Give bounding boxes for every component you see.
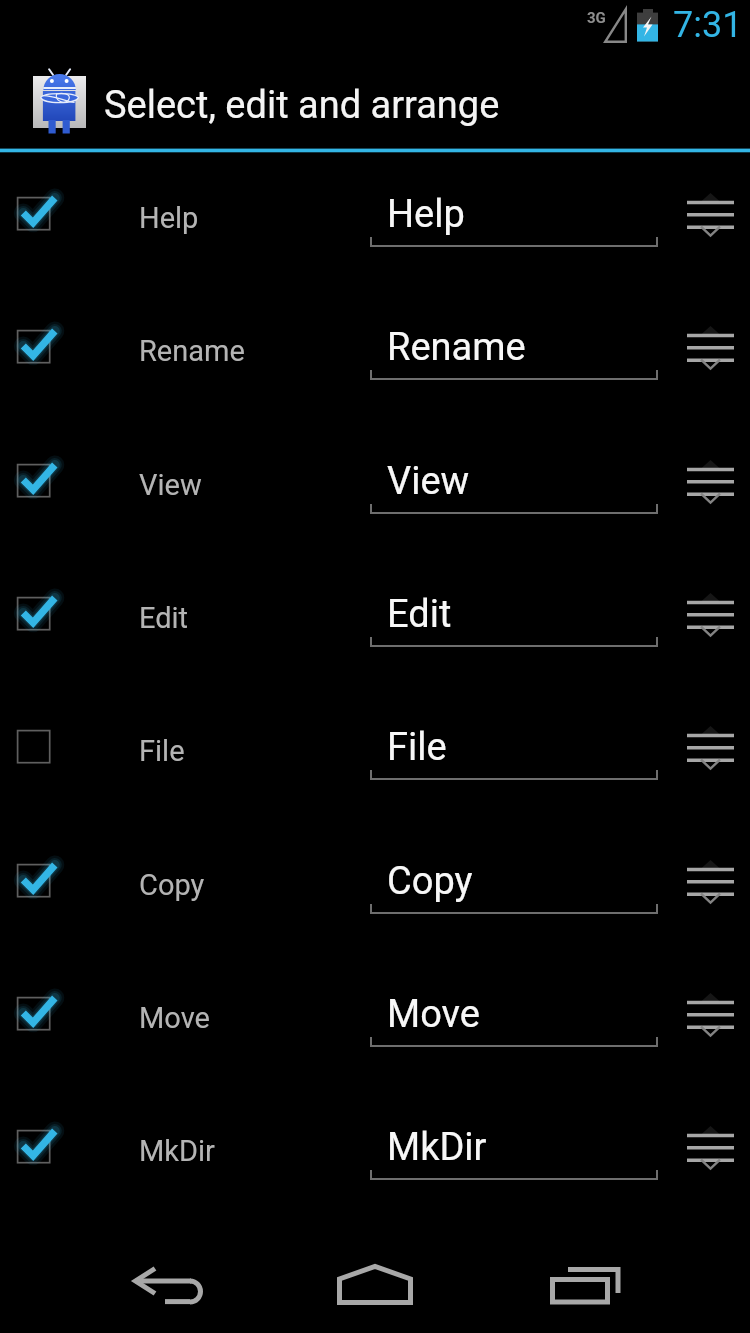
button[interactable]: Recent apps xyxy=(480,1240,690,1333)
staticText: 3G xyxy=(587,9,606,27)
button[interactable]: Edit checked xyxy=(0,586,68,642)
button[interactable]: Help xyxy=(370,178,658,250)
button[interactable]: Edit checked xyxy=(0,572,750,656)
button[interactable]: MkDir checked xyxy=(0,1105,750,1189)
staticText: Edit xyxy=(139,601,189,635)
button[interactable]: Reorder MkDir xyxy=(682,1111,744,1177)
button[interactable]: Rename xyxy=(370,311,658,383)
button[interactable]: Home xyxy=(270,1240,480,1333)
button[interactable]: View checked xyxy=(0,453,68,509)
button[interactable]: Move checked xyxy=(0,986,68,1042)
button[interactable]: MkDir xyxy=(370,1111,658,1183)
button[interactable]: Select, edit and arrange xyxy=(0,52,540,148)
button[interactable]: Reorder Copy xyxy=(682,845,744,911)
button[interactable]: Reorder Edit xyxy=(682,578,744,644)
staticText: Help xyxy=(139,201,199,235)
button[interactable]: Edit xyxy=(370,578,658,650)
staticText: View xyxy=(387,459,470,504)
staticText: Select, edit and arrange xyxy=(104,83,500,128)
button[interactable]: Copy checked xyxy=(0,839,750,923)
staticText: Copy xyxy=(139,868,205,902)
staticText: File xyxy=(387,725,447,770)
button[interactable]: Help checked xyxy=(0,186,68,242)
button[interactable]: View checked xyxy=(0,439,750,523)
button[interactable]: Reorder Move xyxy=(682,978,744,1044)
button[interactable]: Reorder View xyxy=(682,445,744,511)
staticText: File xyxy=(139,734,185,768)
staticText: Edit xyxy=(387,592,452,637)
button[interactable]: File unchecked xyxy=(0,705,750,789)
staticText: MkDir xyxy=(139,1134,215,1168)
button[interactable]: Move xyxy=(370,978,658,1050)
button[interactable]: Reorder Help xyxy=(682,178,744,244)
button[interactable]: MkDir checked xyxy=(0,1119,68,1175)
staticText: Move xyxy=(139,1001,210,1035)
button[interactable]: Copy checked xyxy=(0,853,68,909)
staticText: Rename xyxy=(139,334,245,368)
button[interactable]: Reorder Rename xyxy=(682,311,744,377)
button[interactable]: File unchecked xyxy=(0,719,68,775)
button[interactable]: Help checked xyxy=(0,172,750,256)
button[interactable]: Reorder File xyxy=(682,711,744,777)
staticText: Rename xyxy=(387,325,526,370)
button[interactable]: Copy xyxy=(370,845,658,917)
staticText: Move xyxy=(387,992,480,1037)
button[interactable]: Rename checked xyxy=(0,305,750,389)
button[interactable]: View xyxy=(370,445,658,517)
button[interactable]: Rename checked xyxy=(0,319,68,375)
staticText: View xyxy=(139,468,202,502)
staticText: MkDir xyxy=(387,1125,487,1170)
staticText: Copy xyxy=(387,859,473,904)
button[interactable]: Move checked xyxy=(0,972,750,1056)
staticText: 7:31 xyxy=(673,4,743,46)
button[interactable]: Back xyxy=(61,1240,271,1333)
staticText: Help xyxy=(387,192,465,237)
button[interactable]: File xyxy=(370,711,658,783)
